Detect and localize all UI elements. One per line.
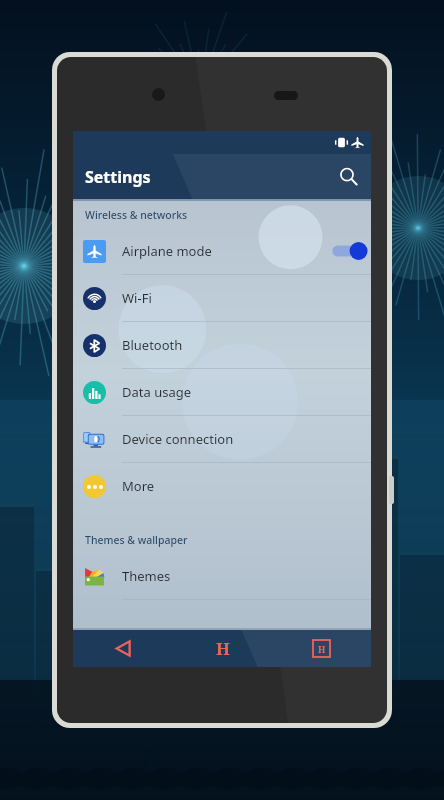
staticText: Themes <box>122 567 355 585</box>
staticText: Airplane mode <box>122 242 325 260</box>
button[interactable]: Bluetooth <box>73 322 371 369</box>
staticText: Wireless & networks <box>85 208 188 222</box>
button[interactable]: Data usage <box>73 369 371 416</box>
staticText: Device connection <box>122 430 355 448</box>
staticText: More <box>122 477 355 495</box>
button[interactable]: Back <box>73 630 173 667</box>
button[interactable]: Recent apps <box>272 630 371 667</box>
staticText: H <box>216 637 230 660</box>
button[interactable]: Airplane mode <box>73 228 371 275</box>
staticText: Themes & wallpaper <box>85 533 188 547</box>
button[interactable]: Search <box>326 154 371 199</box>
button[interactable]: Device connection <box>73 416 371 463</box>
button[interactable] <box>325 238 371 264</box>
button[interactable]: Wi-Fi <box>73 275 371 322</box>
staticText: Data usage <box>122 383 355 401</box>
button[interactable]: Home <box>173 630 272 667</box>
staticText: Wi-Fi <box>122 289 355 307</box>
staticText: Bluetooth <box>122 336 355 354</box>
staticText: Settings <box>85 166 151 188</box>
staticText: H <box>318 643 326 655</box>
button[interactable]: More <box>73 463 371 509</box>
button[interactable]: Themes <box>73 553 371 600</box>
